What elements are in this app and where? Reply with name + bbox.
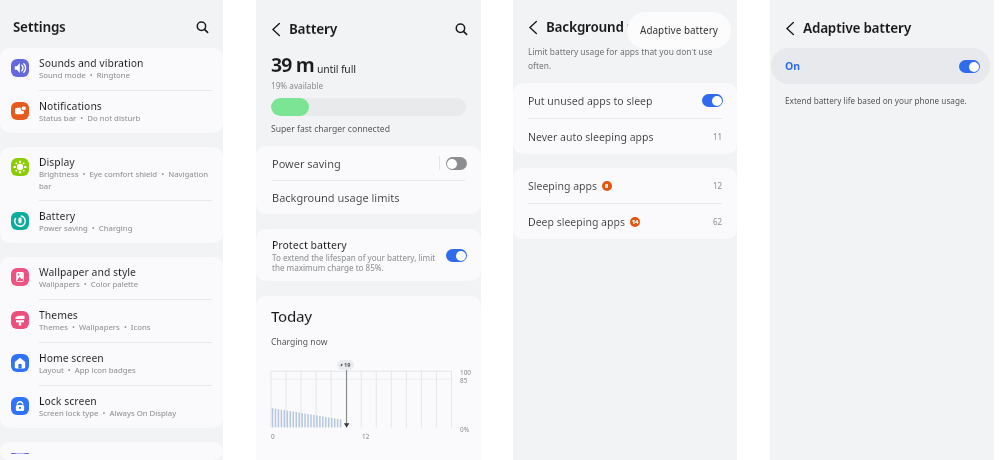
button[interactable]: Battery [0,201,223,243]
staticText: On [785,59,801,73]
staticText: Sleeping apps [528,179,597,193]
staticText: Wallpaper and style [39,265,137,279]
button[interactable]: Back [524,18,542,36]
staticText: 11 [713,131,723,142]
button[interactable]: Lock screen [0,386,223,428]
button[interactable]: Notifications [0,91,223,133]
staticText: 14 [632,218,639,226]
button[interactable]: Back [781,19,799,37]
staticText: Status bar • Do not disturb [39,113,141,124]
staticText: 8 [605,182,609,190]
button[interactable]: Security and privacy [0,442,223,460]
button[interactable]: Back [267,20,285,38]
button[interactable]: Protect battery [256,229,481,281]
button[interactable]: Power saving [256,146,481,180]
staticText: Lock screen [39,394,97,408]
staticText: Layout • App icon badges [39,365,136,376]
button[interactable]: Search [452,20,470,38]
staticText: 19 [344,361,351,369]
staticText: Brightness • Eye comfort shield • Naviga… [39,169,211,191]
staticText: Themes • Wallpapers • Icons [39,322,151,333]
button[interactable]: Home screen [0,343,223,386]
staticText: Power saving • Charging [39,223,133,234]
staticText: Limit battery usage for apps that you do… [528,46,714,71]
staticText: Today [271,306,312,326]
button[interactable]: Put unused apps to sleep [513,83,737,118]
staticText: 12 [713,180,723,191]
staticText: Protect battery [272,238,347,252]
staticText: Display [39,155,75,169]
staticText: Battery [39,209,76,223]
staticText: 39 m [271,51,314,78]
staticText: Charging now [271,336,328,348]
button[interactable]: Themes [0,300,223,343]
staticText: Screen lock type • Always On Display [39,408,177,419]
button[interactable]: Never auto sleeping apps [513,119,737,154]
staticText: Extend battery life based on your phone … [785,95,967,106]
staticText: Adaptive battery [640,24,719,37]
staticText: Settings [13,18,66,36]
button[interactable]: Wallpaper and style [0,257,223,300]
staticText: 100 [460,368,471,377]
staticText: Deep sleeping apps [528,215,625,229]
staticText: Super fast charger connected [271,123,390,135]
staticText: Sound mode • Ringtone [39,70,130,81]
staticText: Home screen [39,351,104,365]
staticText: 19% available [271,80,324,91]
staticText: Themes [39,308,78,322]
staticText: 0 [271,432,275,441]
button[interactable]: Display [0,147,223,201]
button[interactable]: On [771,48,990,84]
staticText: To extend the lifespan of your battery, … [272,252,438,273]
staticText: Sounds and vibration [39,56,144,70]
staticText: Notifications [39,99,102,113]
staticText: 62 [713,216,723,227]
staticText: Power saving [272,156,341,171]
button[interactable]: Sleeping apps [513,168,737,203]
button[interactable]: Search [193,18,211,36]
button[interactable]: Adaptive battery [627,12,731,49]
staticText: 12 [362,432,370,441]
staticText: 85 [460,376,468,385]
staticText: 0% [460,425,469,434]
staticText: Background usage limits [546,18,705,36]
staticText: Battery [289,20,338,38]
staticText: Wallpapers • Color palette [39,279,139,290]
staticText: Put unused apps to sleep [528,94,653,108]
staticText: Background usage limits [272,190,400,205]
staticText: Adaptive battery [803,19,912,37]
button[interactable]: Background usage limits [256,181,481,214]
button[interactable]: Deep sleeping apps [513,204,737,239]
button[interactable]: Sounds and vibration [0,48,223,91]
staticText: Never auto sleeping apps [528,130,654,144]
staticText: until full [317,62,356,76]
